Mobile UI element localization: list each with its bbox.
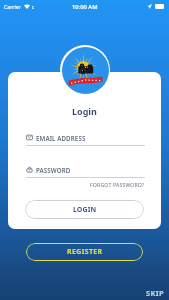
staticText: LOGIN bbox=[73, 205, 97, 215]
staticText: SKIP bbox=[146, 288, 164, 298]
staticText: 10:00 AM bbox=[72, 3, 98, 11]
staticText: FORGOT PASSWORD? bbox=[90, 181, 145, 188]
staticText: Carrier bbox=[4, 3, 21, 10]
staticText: PASSWORD bbox=[36, 166, 71, 174]
other: App logo bbox=[60, 45, 110, 95]
staticText: Login bbox=[72, 105, 97, 117]
button[interactable]: FORGOT PASSWORD? bbox=[70, 179, 145, 190]
button[interactable]: REGISTER bbox=[26, 243, 143, 261]
staticText: EMAIL ADDRESS bbox=[36, 134, 86, 142]
button[interactable]: LOGIN bbox=[25, 200, 144, 219]
staticText: c bbox=[32, 4, 35, 10]
staticText: REGISTER bbox=[67, 247, 103, 257]
button[interactable]: SKIP bbox=[143, 286, 167, 300]
